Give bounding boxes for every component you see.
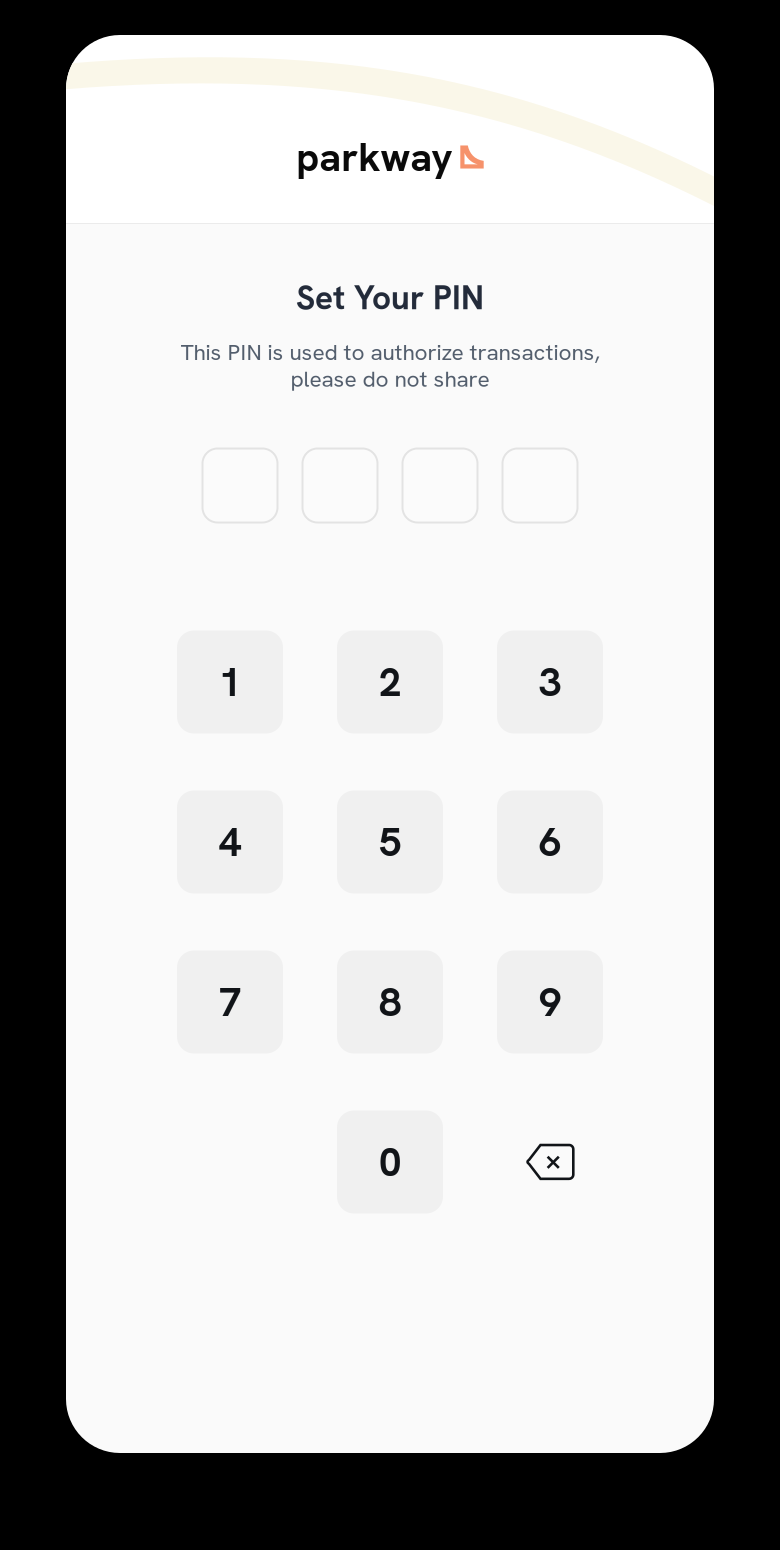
button[interactable]: 2 [337,630,443,733]
staticText: 4 [219,816,241,868]
staticText: This PIN is used to authorize transactio… [180,337,599,367]
button[interactable]: 0 [337,1110,443,1213]
button[interactable]: 3 [497,630,603,733]
staticText: parkway [296,131,452,183]
button[interactable]: 8 [337,950,443,1053]
button[interactable]: 1 [177,630,283,733]
button[interactable]: Delete [497,1110,603,1213]
button[interactable]: 4 [177,790,283,893]
staticText: 5 [379,816,401,868]
staticText: 3 [539,656,561,708]
staticText: Set Your PIN [296,276,484,319]
staticText: 9 [539,976,561,1028]
staticText: 7 [219,976,241,1028]
button[interactable]: 7 [177,950,283,1053]
staticText: 2 [379,656,401,708]
button[interactable]: 5 [337,790,443,893]
button[interactable]: 6 [497,790,603,893]
staticText: 0 [379,1136,401,1188]
staticText: please do not share [290,364,489,393]
staticText: 6 [539,816,561,868]
button[interactable]: 9 [497,950,603,1053]
staticText: 8 [379,976,401,1028]
staticText: 1 [219,656,241,708]
